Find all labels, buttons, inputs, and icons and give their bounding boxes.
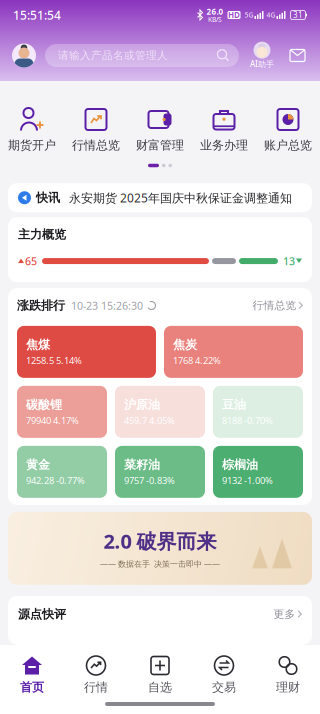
staticText: 26.0 xyxy=(206,6,223,17)
staticText: 菜籽油 xyxy=(124,457,160,472)
button[interactable]: 请输入产品名或管理人 xyxy=(45,44,239,67)
staticText: 豆油 xyxy=(222,397,246,412)
staticText: 棕榈油 xyxy=(222,457,258,472)
button[interactable]: 碳酸锂 xyxy=(17,386,107,438)
button[interactable]: 业务办理 xyxy=(192,107,256,153)
button[interactable]: 更多 xyxy=(273,608,302,621)
staticText: —— 数据在手 决策一击即中 —— xyxy=(100,558,220,569)
staticText: 理财 xyxy=(276,680,300,695)
staticText: HD xyxy=(228,10,240,20)
button[interactable]: 棕榈油 xyxy=(213,446,303,498)
staticText: 31 xyxy=(293,10,303,20)
button[interactable]: 期货开户 xyxy=(0,107,64,153)
staticText: 79940 4.17% xyxy=(26,414,79,426)
staticText: 行情总览 xyxy=(252,299,296,312)
staticText: 主力概览 xyxy=(18,227,66,242)
button[interactable]: 账户总览 xyxy=(256,107,320,153)
button[interactable]: 行情总览 xyxy=(252,299,303,312)
staticText: 永安期货 2025年国庆中秋保证金调整通知 xyxy=(69,190,292,206)
staticText: 13 xyxy=(283,254,295,268)
staticText: 源点快评 xyxy=(18,607,66,622)
staticText: 期货开户 xyxy=(8,138,56,153)
staticText: KB/S xyxy=(208,15,222,24)
staticText: 9132 -1.00% xyxy=(222,474,273,486)
staticText: 涨跌排行 xyxy=(17,298,65,313)
button[interactable]: 沪原油 xyxy=(115,386,205,438)
button[interactable]: 2.0 破界而来 xyxy=(8,512,312,585)
staticText: 5G xyxy=(244,11,253,19)
staticText: 9757 -0.83% xyxy=(124,474,175,486)
staticText: 942.28 -0.77% xyxy=(26,474,85,486)
staticText: 更多 xyxy=(273,608,295,621)
staticText: 财富管理 xyxy=(136,138,184,153)
staticText: 焦炭 xyxy=(173,337,197,352)
staticText: 请输入产品名或管理人 xyxy=(58,49,168,62)
staticText: 15:51:54 xyxy=(13,7,61,23)
button[interactable]: 菜籽油 xyxy=(115,446,205,498)
staticText: 焦煤 xyxy=(26,337,50,352)
button[interactable]: AI助手 xyxy=(249,42,275,68)
staticText: 沪原油 xyxy=(124,397,160,412)
staticText: 8188 -0.70% xyxy=(222,414,273,426)
staticText: 2.0 破界而来 xyxy=(103,528,216,554)
button[interactable]: 豆油 xyxy=(213,386,303,438)
staticText: 业务办理 xyxy=(200,138,248,153)
staticText: 1768 4.22% xyxy=(173,354,221,366)
staticText: 黄金 xyxy=(26,457,50,472)
button[interactable]: 焦煤 xyxy=(17,326,156,378)
staticText: 4G xyxy=(266,11,275,19)
button[interactable]: 消息 xyxy=(290,49,305,61)
staticText: 快讯 xyxy=(36,190,60,205)
button[interactable]: 首页 xyxy=(0,645,64,701)
staticText: 行情 xyxy=(84,680,108,695)
staticText: 交易 xyxy=(212,680,236,695)
button[interactable]: 理财 xyxy=(256,645,320,701)
staticText: 账户总览 xyxy=(264,138,312,153)
staticText: 碳酸锂 xyxy=(26,397,62,412)
staticText: 459.7 4.05% xyxy=(124,414,175,426)
staticText: 行情总览 xyxy=(72,138,120,153)
staticText: 首页 xyxy=(20,680,44,695)
staticText: AI助手 xyxy=(250,59,274,69)
staticText: 10-23 15:26:30 xyxy=(71,298,143,313)
button[interactable]: 交易 xyxy=(192,645,256,701)
button[interactable]: 行情 xyxy=(64,645,128,701)
staticText: 1258.5 5.14% xyxy=(26,354,82,366)
button[interactable]: 自选 xyxy=(128,645,192,701)
button[interactable]: 行情总览 xyxy=(64,107,128,153)
button[interactable]: 焦炭 xyxy=(164,326,303,378)
button[interactable]: 快讯 xyxy=(8,183,312,212)
button[interactable]: 财富管理 xyxy=(128,107,192,153)
staticText: 自选 xyxy=(148,680,172,695)
staticText: 65 xyxy=(25,254,37,268)
button[interactable]: 黄金 xyxy=(17,446,107,498)
